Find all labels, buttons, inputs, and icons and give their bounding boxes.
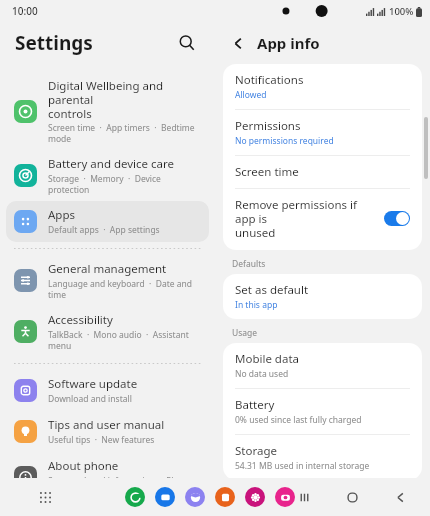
staticText: About phone	[48, 458, 119, 474]
button[interactable]: Software update	[6, 370, 209, 411]
button[interactable]: Remove permissions if app is unused	[223, 189, 422, 250]
staticText: 54.31 MB used in internal storage	[235, 460, 370, 472]
staticText: Tips and user manual	[48, 417, 165, 433]
button[interactable]: Tips and user manual	[6, 411, 209, 452]
staticText: No data used	[235, 368, 289, 380]
button[interactable]: Set as default	[223, 274, 422, 319]
button[interactable]: Digital Wellbeing and parental controls	[6, 72, 209, 150]
button[interactable]: Mobile data	[223, 343, 422, 388]
staticText: App info	[257, 33, 320, 53]
button[interactable]: Permissions	[223, 110, 422, 155]
button[interactable]: Search	[173, 29, 201, 57]
staticText: Screen time · App timers · Bedtime mode	[48, 122, 201, 144]
button[interactable]: Recents	[292, 485, 316, 509]
staticText: Storage · Memory · Device protection	[48, 173, 201, 195]
button[interactable]: Notes	[215, 487, 235, 507]
button[interactable]: Back	[225, 30, 251, 56]
staticText: Status · Legal information · Phone name	[48, 475, 201, 497]
button[interactable]: Screen time	[223, 156, 422, 188]
staticText: Digital Wellbeing and parental controls	[48, 78, 201, 121]
button[interactable]: About phone	[6, 452, 209, 503]
button[interactable]: Home	[340, 485, 364, 509]
button[interactable]: Uninstall	[286, 484, 340, 512]
button[interactable]: Force stop	[355, 484, 415, 512]
button[interactable]: Battery and device care	[6, 150, 209, 201]
staticText: Permissions	[235, 118, 301, 134]
staticText: Useful tips · New features	[48, 434, 155, 446]
staticText: General management	[48, 261, 167, 277]
button[interactable]: Battery	[223, 389, 422, 434]
staticText: Set as default	[235, 282, 309, 298]
button[interactable]: Galaxy Store	[245, 487, 265, 507]
button[interactable]: Messages	[155, 487, 175, 507]
staticText: Apps	[48, 207, 76, 223]
button[interactable]: Apps	[6, 201, 209, 242]
staticText: Battery and device care	[48, 156, 175, 172]
button[interactable]: Internet	[185, 487, 205, 507]
staticText: Storage	[235, 443, 277, 459]
button[interactable]: Accessibility	[6, 306, 209, 357]
staticText: Accessibility	[48, 312, 113, 328]
button[interactable]: Notifications	[223, 64, 422, 109]
staticText: 10:00	[12, 4, 38, 18]
button[interactable]: Apps	[34, 486, 56, 508]
button[interactable]: Camera	[275, 487, 295, 507]
button[interactable]: Open	[230, 484, 271, 512]
staticText: 100%	[389, 5, 414, 18]
staticText: Remove permissions if app is unused	[235, 197, 376, 240]
staticText: Screen time	[235, 164, 299, 180]
staticText: Battery	[235, 397, 275, 413]
button[interactable]: Storage	[223, 435, 422, 480]
staticText: Open	[240, 505, 261, 509]
staticText: Settings	[15, 30, 93, 56]
button[interactable]: Back	[388, 485, 412, 509]
staticText: Download and install	[48, 393, 132, 405]
button[interactable]: General management	[6, 255, 209, 306]
staticText: Language and keyboard · Date and time	[48, 278, 201, 300]
staticText: Defaults	[232, 258, 266, 270]
staticText: 0% used since last fully charged	[235, 414, 362, 426]
staticText: Allowed	[235, 89, 267, 101]
staticText: Mobile data	[235, 351, 299, 367]
staticText: Software update	[48, 376, 138, 392]
staticText: In this app	[235, 299, 278, 311]
staticText: No permissions required	[235, 135, 334, 147]
staticText: Usage	[232, 327, 258, 339]
staticText: Default apps · App settings	[48, 224, 160, 236]
staticText: TalkBack · Mono audio · Assistant menu	[48, 329, 201, 351]
staticText: Notifications	[235, 72, 304, 88]
button[interactable]: Remove permissions toggle	[384, 211, 410, 226]
button[interactable]: Phone	[125, 487, 145, 507]
